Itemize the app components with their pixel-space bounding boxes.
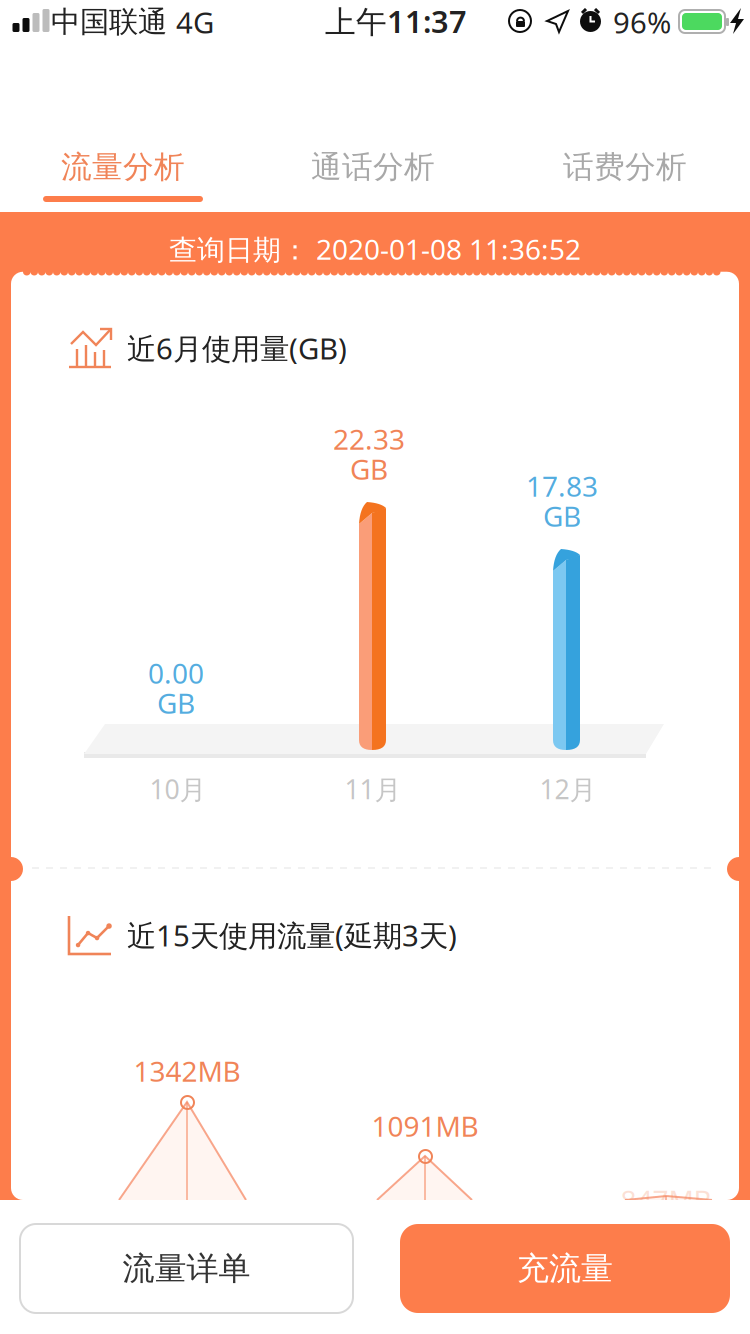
staticText: 查询日期： 2020-01-08 11:36:52 xyxy=(169,230,581,268)
staticText: 1091MB xyxy=(371,1107,478,1145)
staticText: 充流量 xyxy=(517,1249,613,1288)
staticText: 话费分析 xyxy=(563,148,687,186)
staticText: 中国联通 xyxy=(51,4,167,40)
staticText: 0.00 xyxy=(148,654,204,692)
staticText: 11月 xyxy=(344,771,401,807)
staticText: 通话分析 xyxy=(311,148,435,186)
staticText: 1342MB xyxy=(133,1052,240,1090)
staticText: GB xyxy=(157,684,195,722)
staticText: 上午11:37 xyxy=(325,1,467,41)
staticText: GB xyxy=(543,497,581,535)
button[interactable]: 话费分析 xyxy=(500,0,750,212)
staticText: 847MB xyxy=(620,1181,711,1219)
staticText: 22.33 xyxy=(333,420,405,458)
staticText: 10月 xyxy=(149,771,206,807)
staticText: 12月 xyxy=(539,771,596,807)
button[interactable]: 流量分析 xyxy=(0,0,248,212)
staticText: 4G xyxy=(176,2,214,41)
staticText: 流量分析 xyxy=(61,148,185,186)
staticText: GB xyxy=(350,450,388,488)
staticText: 17.83 xyxy=(526,467,598,505)
button[interactable]: 流量详单 xyxy=(20,1224,353,1313)
button[interactable]: 充流量 xyxy=(400,1224,730,1313)
staticText: 近15天使用流量(延期3天) xyxy=(127,915,457,954)
button[interactable]: 通话分析 xyxy=(248,0,498,212)
staticText: 流量详单 xyxy=(122,1249,250,1288)
staticText: 96% xyxy=(613,2,671,41)
staticText: 近6月使用量(GB) xyxy=(127,328,347,367)
